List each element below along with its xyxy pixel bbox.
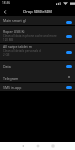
button[interactable]: Switch on <box>64 19 74 25</box>
staticText: 18:36 <box>2 1 11 5</box>
button[interactable]: Roper USB Ki <box>0 26 75 43</box>
button[interactable]: Recent apps <box>45 142 60 150</box>
staticText: All swipe tablet m <box>3 44 33 49</box>
button[interactable]: All swipe tablet m <box>0 44 75 60</box>
staticText: SMS in-app <box>3 85 22 90</box>
staticText: Data <box>3 64 11 69</box>
staticText: Telegram <box>3 76 19 81</box>
button[interactable]: Switch off <box>64 74 74 80</box>
button[interactable]: Back <box>0 7 9 16</box>
button[interactable]: Back <box>15 142 30 150</box>
button[interactable]: Switch on <box>64 63 74 69</box>
staticText: 2 GB <box>3 53 10 57</box>
staticText: Roper USB Ki <box>3 29 25 34</box>
staticText: Drop SIM/eSIM <box>23 9 52 14</box>
staticText: Clean all data in phone cache and more <box>3 34 57 38</box>
button[interactable]: Switch on <box>64 84 74 90</box>
staticText: Main smart gl <box>3 18 26 23</box>
button[interactable]: Home <box>30 142 45 150</box>
staticText: 120 MB <box>3 38 14 42</box>
staticText: Clean all details personals d <box>3 49 41 53</box>
button[interactable]: Telegram <box>0 72 75 82</box>
button[interactable]: Switch on <box>64 33 74 39</box>
button[interactable]: Main smart gl <box>0 16 75 25</box>
button[interactable]: Switch on <box>64 49 74 55</box>
button[interactable]: Data <box>0 61 75 72</box>
button[interactable]: SMS in-app <box>0 83 75 91</box>
